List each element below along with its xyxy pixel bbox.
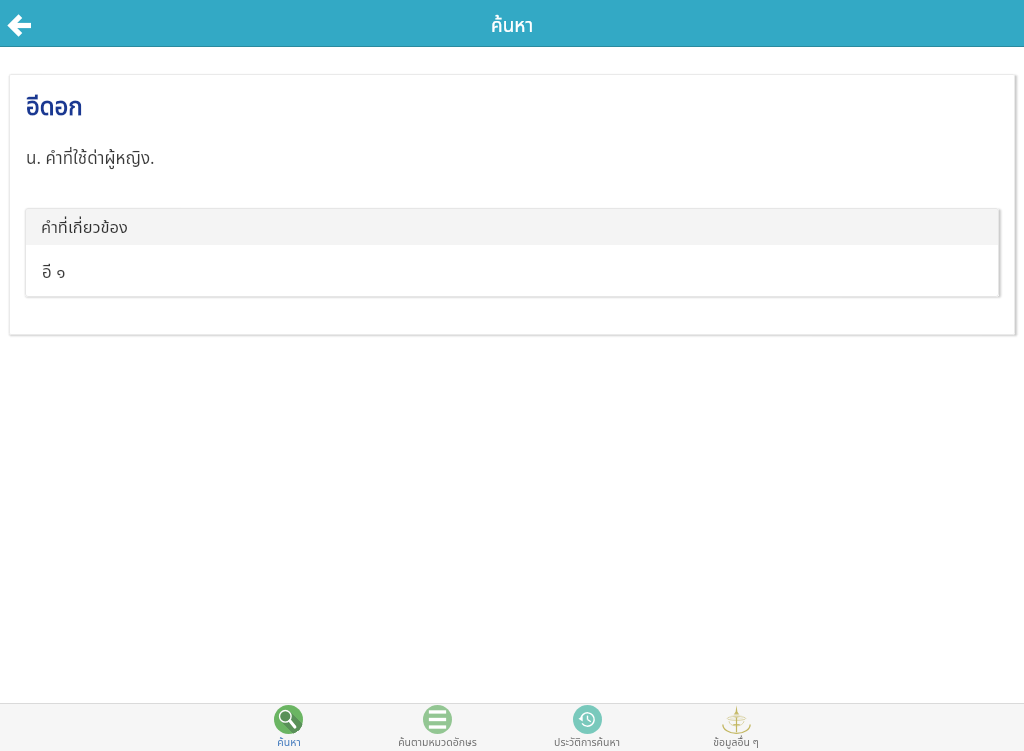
staticText: น. คำที่ใช้ด่าผู้หญิง. bbox=[26, 146, 155, 172]
button[interactable]: Browse by letter bbox=[363, 704, 512, 751]
button[interactable]: Other information bbox=[661, 704, 810, 751]
staticText: คำที่เกี่ยวข้อง bbox=[41, 215, 128, 240]
button[interactable]: Search bbox=[214, 704, 363, 751]
staticText: ค้นหา bbox=[491, 12, 534, 41]
staticText: ค้นหา bbox=[277, 735, 301, 751]
button[interactable]: Back bbox=[0, 6, 38, 44]
staticText: ประวัติการค้นหา bbox=[554, 735, 620, 751]
staticText: ค้นตามหมวดอักษร bbox=[398, 735, 477, 751]
staticText: อีดอก bbox=[26, 90, 83, 126]
staticText: ข้อมูลอื่น ๆ bbox=[713, 735, 759, 751]
staticText: อี ๑ bbox=[42, 260, 66, 286]
button[interactable]: Search history bbox=[512, 704, 661, 751]
button[interactable]: อี ๑ bbox=[25, 245, 999, 297]
